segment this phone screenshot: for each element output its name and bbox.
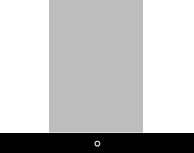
button[interactable]: Home	[90, 136, 104, 150]
